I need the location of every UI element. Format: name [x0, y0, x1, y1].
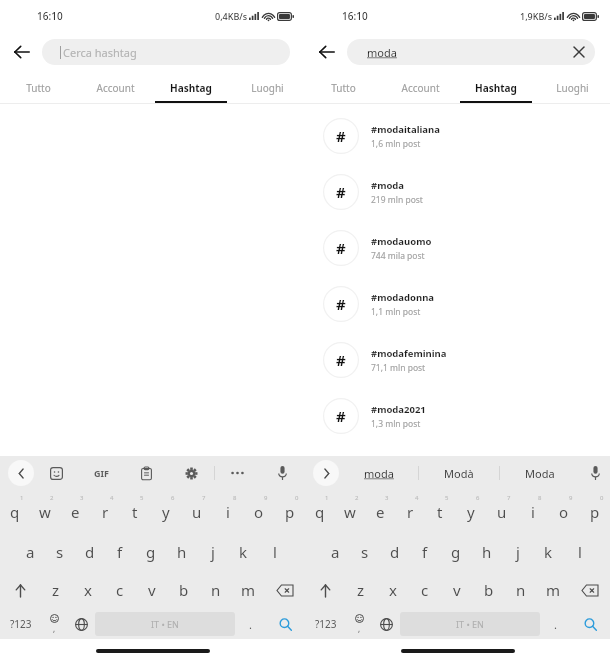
button[interactable]: #	[305, 332, 610, 388]
button[interactable]: y	[455, 490, 486, 533]
button[interactable]: IT • EN	[95, 612, 235, 636]
button[interactable]: s	[350, 533, 380, 571]
button[interactable]: Espandi barra	[313, 460, 339, 486]
button[interactable]: moda	[347, 39, 595, 65]
button[interactable]: o	[548, 490, 579, 533]
button[interactable]: Luoghi	[229, 72, 305, 103]
button[interactable]: Account	[382, 72, 458, 103]
button[interactable]: x	[377, 571, 409, 609]
button[interactable]: z	[40, 571, 72, 609]
button[interactable]: q	[0, 490, 30, 533]
button[interactable]: j	[502, 533, 533, 571]
button[interactable]: r	[395, 490, 425, 533]
button[interactable]: i	[212, 490, 243, 533]
button[interactable]: j	[197, 533, 228, 571]
button[interactable]: a	[15, 533, 45, 571]
button[interactable]: m	[232, 571, 264, 609]
button[interactable]: o	[243, 490, 274, 533]
button[interactable]: #	[305, 164, 610, 220]
button[interactable]: Luoghi	[534, 72, 610, 103]
button[interactable]: Account	[77, 72, 153, 103]
button[interactable]: l	[564, 533, 595, 571]
button[interactable]: r	[90, 490, 120, 533]
button[interactable]: Impostazioni	[169, 456, 214, 490]
button[interactable]: Backspace	[569, 571, 610, 609]
button[interactable]: moda	[339, 456, 418, 490]
button[interactable]: t	[120, 490, 150, 533]
button[interactable]: Maiuscole	[0, 571, 40, 609]
button[interactable]: x	[72, 571, 104, 609]
button[interactable]: d	[75, 533, 105, 571]
button[interactable]: g	[135, 533, 166, 571]
button[interactable]: w	[335, 490, 365, 533]
button[interactable]: .	[235, 609, 265, 639]
button[interactable]: g	[440, 533, 471, 571]
button[interactable]: v	[136, 571, 168, 609]
button[interactable]: n	[200, 571, 232, 609]
button[interactable]: Moda	[500, 456, 580, 490]
button[interactable]: l	[259, 533, 290, 571]
button[interactable]: Sticker	[34, 456, 79, 490]
button[interactable]: #	[305, 220, 610, 276]
button[interactable]: Lingua	[373, 609, 400, 639]
button[interactable]: k	[533, 533, 564, 571]
staticText: #moda	[371, 179, 405, 192]
button[interactable]: IT • EN	[400, 612, 540, 636]
button[interactable]: m	[537, 571, 569, 609]
button[interactable]: .	[540, 609, 570, 639]
button[interactable]: e	[365, 490, 395, 533]
button[interactable]: u	[181, 490, 212, 533]
button[interactable]: #	[305, 388, 610, 444]
button[interactable]: Emoji	[346, 609, 373, 639]
button[interactable]: Altro	[215, 456, 260, 490]
button[interactable]: i	[517, 490, 548, 533]
button[interactable]: Chiudi barra	[8, 460, 34, 486]
button[interactable]: f	[410, 533, 440, 571]
button[interactable]: Tutto	[0, 72, 77, 103]
button[interactable]: GIF	[79, 456, 124, 490]
button[interactable]: Indietro	[8, 38, 36, 66]
button[interactable]: f	[105, 533, 135, 571]
button[interactable]: w	[30, 490, 60, 533]
button[interactable]: t	[425, 490, 455, 533]
button[interactable]: Tutto	[305, 72, 382, 103]
button[interactable]: Cerca hashtag	[42, 39, 290, 65]
button[interactable]: q	[305, 490, 335, 533]
button[interactable]: Microfono	[260, 456, 305, 490]
button[interactable]: u	[486, 490, 517, 533]
button[interactable]: Emoji	[41, 609, 68, 639]
button[interactable]: Lingua	[68, 609, 95, 639]
button[interactable]: s	[45, 533, 75, 571]
button[interactable]: Backspace	[264, 571, 305, 609]
button[interactable]: e	[60, 490, 90, 533]
button[interactable]: Hashtag	[153, 72, 229, 103]
button[interactable]: #	[305, 276, 610, 332]
button[interactable]: Cerca	[265, 609, 305, 639]
button[interactable]: h	[471, 533, 502, 571]
button[interactable]: h	[166, 533, 197, 571]
button[interactable]: Appunti	[124, 456, 169, 490]
button[interactable]: #	[305, 108, 610, 164]
button[interactable]: p	[579, 490, 610, 533]
button[interactable]: z	[345, 571, 377, 609]
button[interactable]: ?123	[305, 609, 346, 639]
button[interactable]: n	[505, 571, 537, 609]
button[interactable]: ?123	[0, 609, 41, 639]
button[interactable]: Cancella	[569, 42, 589, 62]
button[interactable]: Microfono	[580, 456, 610, 490]
button[interactable]: k	[228, 533, 259, 571]
button[interactable]: v	[441, 571, 473, 609]
button[interactable]: Indietro	[313, 38, 341, 66]
button[interactable]: a	[320, 533, 350, 571]
button[interactable]: y	[150, 490, 181, 533]
button[interactable]: Cerca	[570, 609, 610, 639]
button[interactable]: p	[274, 490, 305, 533]
button[interactable]: c	[104, 571, 136, 609]
button[interactable]: Modà	[419, 456, 499, 490]
button[interactable]: c	[409, 571, 441, 609]
button[interactable]: d	[380, 533, 410, 571]
button[interactable]: b	[473, 571, 505, 609]
button[interactable]: b	[168, 571, 200, 609]
button[interactable]: Hashtag	[458, 72, 534, 103]
button[interactable]: Maiuscole	[305, 571, 345, 609]
